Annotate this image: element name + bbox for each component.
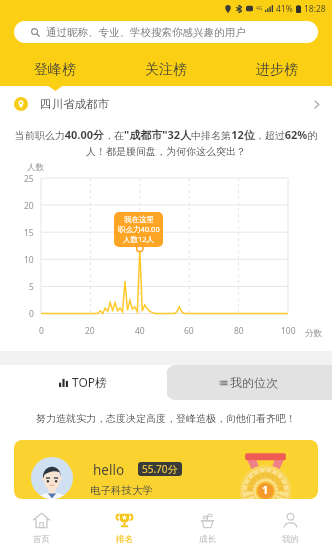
staticText: 我的位次 — [230, 375, 278, 390]
staticText: 100 — [281, 325, 296, 337]
staticText: 首页 — [33, 534, 50, 545]
staticText: 25 — [24, 173, 34, 185]
staticText: 55.70分 — [142, 462, 178, 476]
button[interactable]: 我的位次 — [166, 365, 332, 400]
staticText: 四川省成都市 — [40, 97, 109, 111]
staticText: 41% — [276, 3, 293, 15]
staticText: 电子科技大学 — [90, 484, 153, 497]
staticText: 我的 — [282, 534, 299, 545]
staticText: 进步榜 — [256, 61, 298, 79]
button[interactable]: Home page — [0, 509, 83, 547]
staticText: 80 — [234, 325, 244, 337]
staticText: 5 — [29, 281, 34, 293]
staticText: 20 — [24, 200, 34, 212]
staticText: hello — [93, 461, 125, 479]
staticText: 人数 — [27, 162, 44, 173]
button[interactable]: Ranking — [83, 509, 166, 547]
button[interactable]: 登峰榜 — [0, 43, 110, 86]
staticText: 分数 — [305, 328, 322, 339]
button[interactable]: 关注榜 — [110, 43, 221, 86]
staticText: 0 — [39, 325, 44, 337]
button[interactable]: 通过昵称、专业、学校搜索你感兴趣的用户 — [14, 21, 318, 43]
button[interactable]: TOP榜 — [0, 365, 167, 401]
staticText: 人数12人 — [123, 234, 155, 244]
staticText: 通过昵称、专业、学校搜索你感兴趣的用户 — [46, 26, 246, 39]
staticText: 关注榜 — [145, 61, 187, 79]
button[interactable]: 1 — [14, 440, 318, 499]
staticText: 0 — [29, 308, 34, 320]
button[interactable]: My profile — [249, 509, 332, 547]
staticText: 18:28 — [304, 3, 326, 15]
staticText: 4G — [256, 5, 263, 12]
staticText: 10 — [24, 254, 34, 266]
button[interactable]: 进步榜 — [221, 43, 332, 86]
staticText: TOP榜 — [72, 374, 108, 390]
staticText: 15 — [24, 227, 34, 239]
staticText: 20 — [85, 325, 95, 337]
staticText: 当前职么力40.00分，在"成都市"32人中排名第12位，超过62%的人！都是腰… — [8, 127, 324, 158]
staticText: 职么力40.00 — [118, 224, 160, 234]
staticText: 成长 — [199, 534, 216, 545]
staticText: 努力造就实力，态度决定高度，登峰造极，向他们看齐吧！ — [0, 412, 332, 425]
staticText: 排名 — [116, 534, 133, 545]
staticText: 60 — [184, 325, 194, 337]
staticText: 登峰榜 — [34, 61, 76, 79]
staticText: 我在这里 — [124, 215, 154, 224]
button[interactable]: 四川省成都市 — [14, 86, 320, 122]
staticText: 40 — [135, 325, 145, 337]
staticText: 1 — [262, 482, 269, 497]
button[interactable]: Growth — [166, 509, 249, 547]
